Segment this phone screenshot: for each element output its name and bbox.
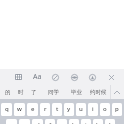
button[interactable]: 毕业 (66, 85, 87, 99)
staticText: k (96, 121, 100, 124)
button[interactable]: Disable prediction (48, 70, 62, 84)
staticText: 时 (18, 89, 24, 96)
button[interactable]: k (93, 119, 103, 124)
staticText: j (85, 121, 87, 124)
staticText: Aa (33, 72, 42, 82)
button[interactable]: d (32, 119, 43, 124)
button[interactable]: g (57, 119, 67, 124)
staticText: u (79, 105, 83, 113)
staticText: t (56, 105, 59, 113)
staticText: q (5, 105, 9, 113)
button[interactable]: Settings (67, 70, 81, 84)
button[interactable]: u (76, 103, 86, 116)
button[interactable]: q (1, 103, 12, 116)
button[interactable]: l (105, 119, 115, 124)
button[interactable]: f (45, 119, 55, 124)
staticText: i (92, 105, 94, 113)
button[interactable]: h (69, 119, 79, 124)
button[interactable]: Keyboard layout (11, 70, 25, 84)
button[interactable]: e (27, 103, 38, 116)
staticText: e (31, 105, 35, 113)
staticText: 毕业 (71, 89, 82, 96)
button[interactable]: s (19, 119, 30, 124)
button[interactable]: p (112, 103, 122, 116)
staticText: l (109, 121, 111, 124)
button[interactable]: Close keyboard (104, 70, 118, 84)
button[interactable]: 的 (0, 85, 15, 99)
button[interactable]: 时 (15, 85, 27, 99)
staticText: r (44, 105, 47, 113)
button[interactable]: 约时候 (87, 85, 109, 99)
staticText: y (67, 105, 71, 113)
staticText: 的 (5, 89, 11, 96)
button[interactable]: j (81, 119, 91, 124)
button[interactable]: t (52, 103, 62, 116)
button[interactable]: 了 (27, 85, 41, 99)
staticText: f (49, 121, 52, 124)
button[interactable]: a (6, 119, 17, 124)
button[interactable]: y (64, 103, 74, 116)
button[interactable]: r (40, 103, 50, 116)
staticText: h (72, 121, 76, 124)
button[interactable]: w (14, 103, 25, 116)
button[interactable]: 同学 (41, 85, 66, 99)
button[interactable]: i (88, 103, 98, 116)
button[interactable]: More candidates (111, 85, 122, 99)
button[interactable]: Font size (30, 70, 44, 84)
button[interactable]: o (100, 103, 110, 116)
staticText: p (115, 105, 119, 113)
staticText: d (36, 121, 40, 124)
staticText: 了 (31, 89, 37, 96)
staticText: 约时候 (90, 89, 107, 96)
staticText: 同学 (48, 89, 59, 96)
button[interactable]: Voice input (85, 70, 99, 84)
staticText: w (17, 105, 22, 113)
staticText: o (103, 105, 107, 113)
